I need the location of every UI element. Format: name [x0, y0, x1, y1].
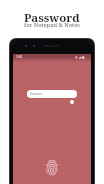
staticText: 1:34: [16, 55, 22, 59]
staticText: for Notepad & Notes: [24, 21, 80, 29]
button[interactable]: Password: [27, 90, 77, 98]
button[interactable]: Unlock: [70, 100, 74, 104]
staticText: Password: [30, 92, 42, 96]
button[interactable]: Fingerprint unlock: [46, 160, 58, 176]
staticText: Password: [24, 10, 80, 26]
